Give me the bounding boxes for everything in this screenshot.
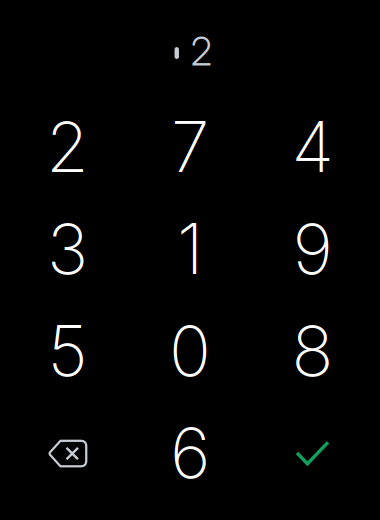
staticText: 5 [47, 309, 87, 393]
button[interactable]: 7 [129, 96, 251, 198]
button[interactable]: 4 [251, 96, 374, 198]
staticText: 9 [292, 207, 332, 291]
button[interactable]: 1 [129, 198, 251, 300]
button[interactable]: 5 [6, 300, 129, 402]
button[interactable]: 9 [251, 198, 374, 300]
staticText: 7 [171, 105, 209, 189]
staticText: 4 [291, 105, 333, 189]
button[interactable]: 3 [6, 198, 129, 300]
staticText: 0 [169, 309, 211, 393]
staticText: 8 [291, 309, 333, 393]
button[interactable]: 8 [251, 300, 374, 402]
staticText: 3 [47, 207, 88, 291]
staticText: 2 [190, 28, 212, 75]
button[interactable]: Delete [6, 402, 129, 504]
button[interactable]: 6 [129, 402, 251, 504]
staticText: 1 [177, 207, 203, 291]
button[interactable]: Confirm [251, 402, 374, 504]
staticText: 6 [170, 411, 210, 495]
button[interactable]: 0 [129, 300, 251, 402]
staticText: 2 [46, 105, 89, 189]
button[interactable]: 2 [6, 96, 129, 198]
